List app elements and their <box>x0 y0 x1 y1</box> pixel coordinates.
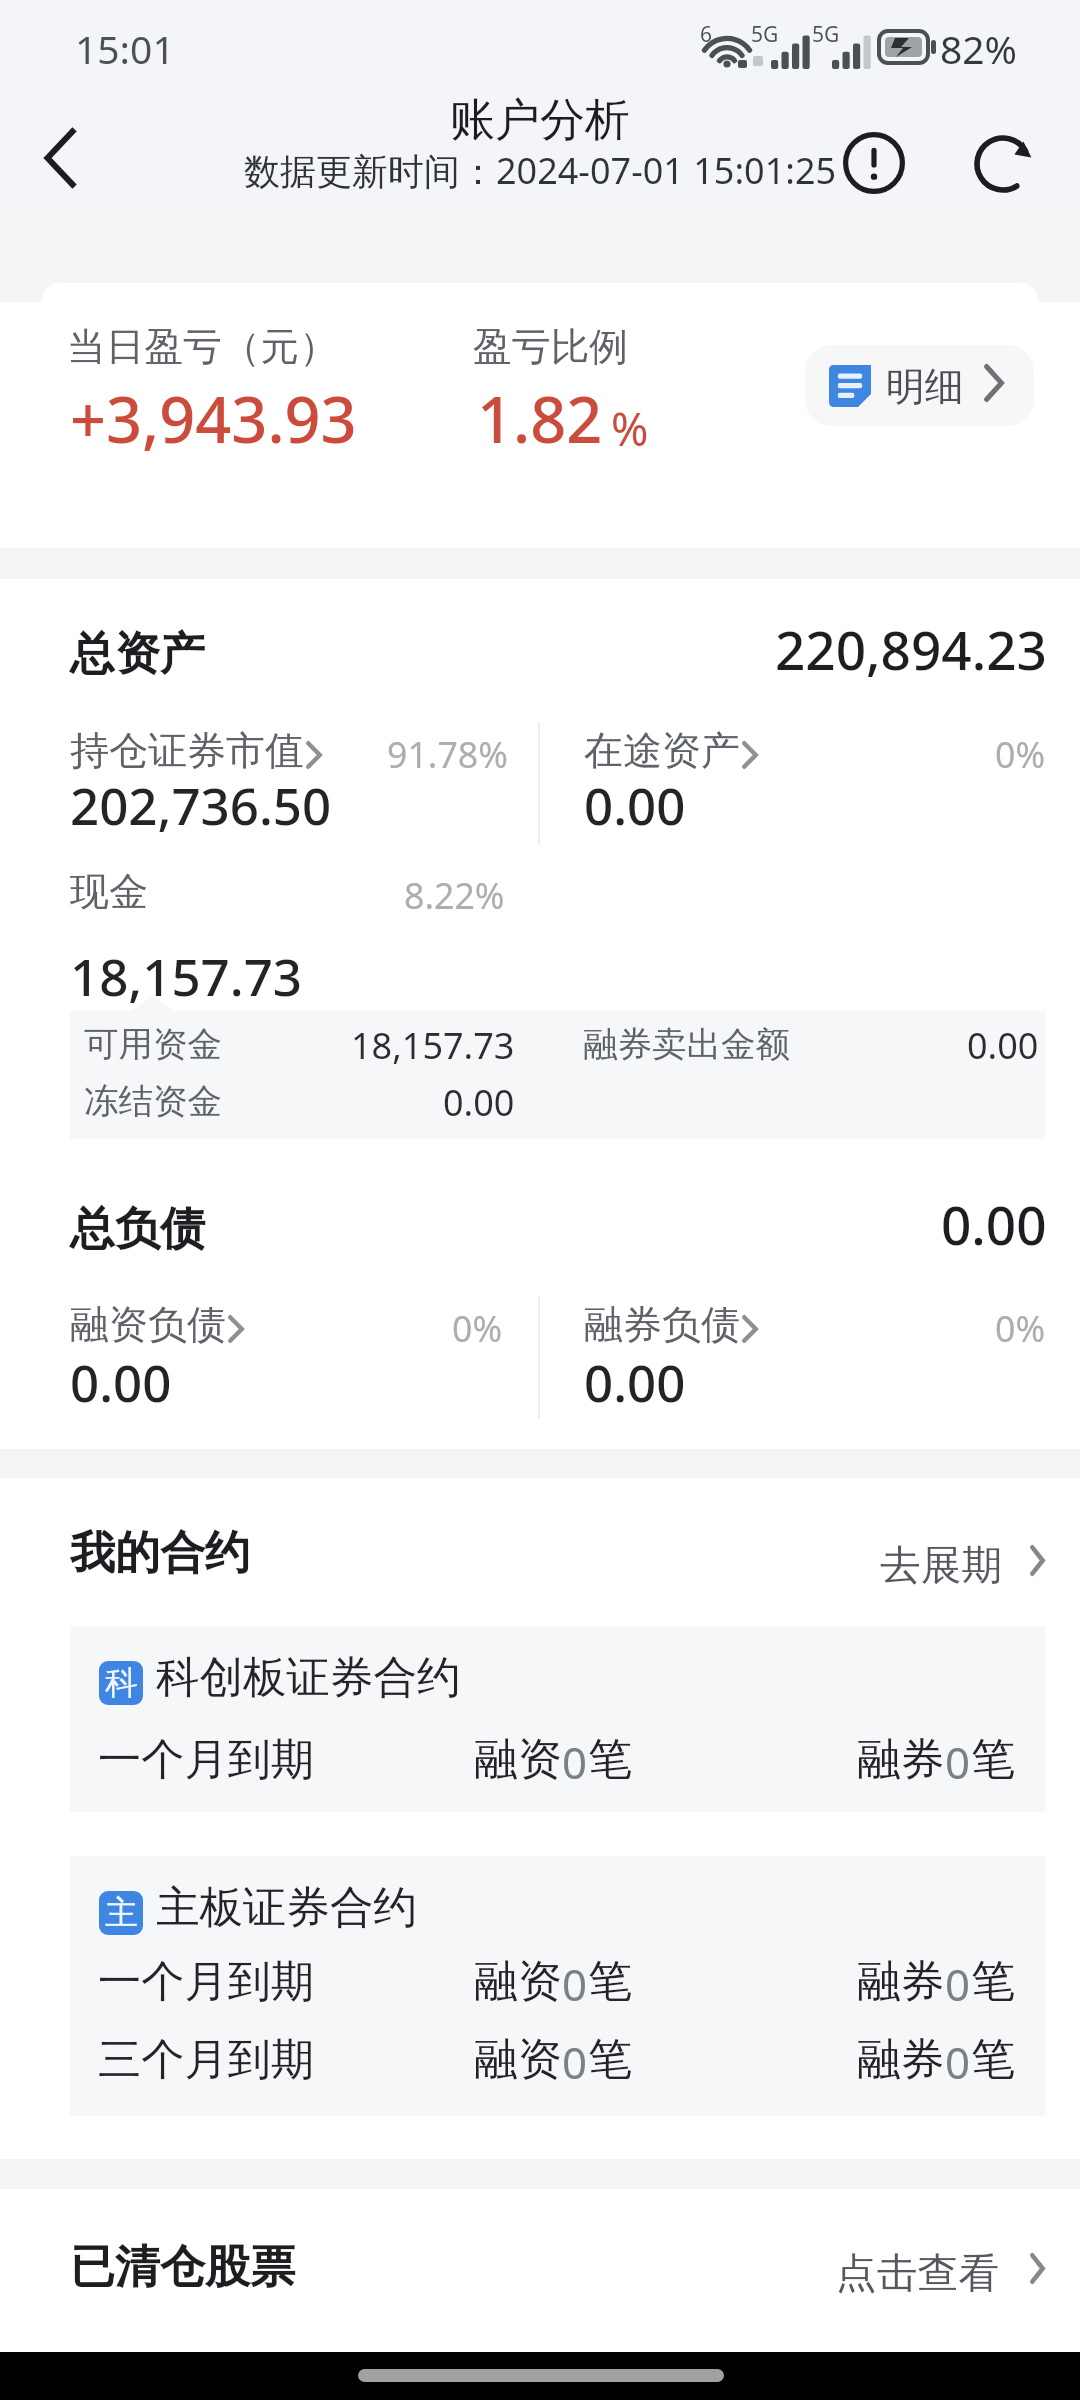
staticText: 一个月到期 <box>98 1732 314 1786</box>
staticText: 0 <box>562 1732 588 1792</box>
staticText: 可用资金 <box>84 1023 222 1066</box>
staticText: 融资 <box>474 1732 562 1787</box>
staticText: 91.78% <box>387 730 508 779</box>
staticText: 当日盈亏（元） <box>67 323 338 372</box>
staticText: 0 <box>945 1732 971 1792</box>
staticText: 0.00 <box>443 1078 515 1127</box>
staticText: 0 <box>562 2032 588 2092</box>
staticText: 盈亏比例 <box>473 323 628 372</box>
staticText: 我的合约 <box>70 1525 250 1582</box>
staticText: 三个月到期 <box>98 2032 314 2086</box>
staticText: 82% <box>940 22 1018 75</box>
staticText: 账户分析 <box>450 92 630 149</box>
button[interactable]: 融资负债 <box>70 1294 270 1346</box>
staticText: 笔 <box>971 1954 1015 2009</box>
button[interactable]: 点击查看 <box>816 2218 1060 2290</box>
staticText: 1.82 <box>477 376 603 462</box>
button[interactable]: 在途资产 <box>584 720 784 772</box>
button[interactable] <box>805 345 1034 426</box>
staticText: 点击查看 <box>836 2248 1000 2299</box>
staticText: % <box>611 398 649 459</box>
staticText: 冻结资金 <box>84 1080 222 1123</box>
staticText: 0.00 <box>70 1347 172 1416</box>
button[interactable] <box>70 1856 1045 2116</box>
staticText: 科创板证券合约 <box>156 1650 461 1705</box>
staticText: 5G <box>751 20 779 49</box>
button[interactable]: Refresh <box>939 100 1067 228</box>
staticText: 220,894.23 <box>775 613 1047 685</box>
staticText: 笔 <box>971 2032 1015 2087</box>
staticText: 科 <box>105 1662 138 1704</box>
staticText: 总负债 <box>70 1201 205 1258</box>
staticText: 笔 <box>588 1954 632 2009</box>
button[interactable]: 融券负债 <box>584 1294 784 1346</box>
staticText: 在途资产 <box>584 726 740 775</box>
button[interactable]: Info <box>810 99 938 227</box>
staticText: 0 <box>945 1954 971 2014</box>
staticText: 融资 <box>474 1954 562 2009</box>
staticText: 0% <box>452 1304 503 1353</box>
staticText: 0.00 <box>967 1021 1039 1070</box>
staticText: 一个月到期 <box>98 1954 314 2008</box>
staticText: 笔 <box>971 1732 1015 1787</box>
button[interactable]: Back <box>10 108 110 208</box>
staticText: 笔 <box>588 2032 632 2087</box>
staticText: 融资 <box>474 2032 562 2087</box>
button[interactable]: 去展期 <box>860 1510 1060 1582</box>
button[interactable] <box>70 1626 1045 1812</box>
staticText: 明细 <box>886 362 964 411</box>
staticText: 融券 <box>857 2032 945 2087</box>
staticText: 主板证券合约 <box>156 1880 417 1935</box>
staticText: 数据更新时间：2024-07-01 15:01:25 <box>244 146 837 195</box>
staticText: 持仓证券市值 <box>70 726 304 775</box>
staticText: 0.00 <box>584 1347 686 1416</box>
staticText: 总资产 <box>70 626 205 683</box>
staticText: 5G <box>812 20 840 49</box>
staticText: 18,157.73 <box>351 1021 515 1070</box>
staticText: 0% <box>995 1304 1046 1353</box>
staticText: 融券 <box>857 1954 945 2009</box>
staticText: 6 <box>700 20 713 49</box>
staticText: 去展期 <box>880 1540 1003 1591</box>
staticText: 融资负债 <box>70 1300 226 1349</box>
staticText: 8.22% <box>404 871 505 920</box>
staticText: 18,157.73 <box>70 941 302 1010</box>
staticText: 0 <box>945 2032 971 2092</box>
staticText: +3,943.93 <box>70 376 357 462</box>
staticText: 融券负债 <box>584 1300 740 1349</box>
staticText: 0.00 <box>584 770 686 839</box>
button[interactable]: 持仓证券市值 <box>70 720 330 772</box>
staticText: 现金 <box>70 867 148 916</box>
staticText: 15:01 <box>75 22 175 75</box>
staticText: 0.00 <box>941 1188 1047 1260</box>
staticText: 笔 <box>588 1732 632 1787</box>
staticText: 融券 <box>857 1732 945 1787</box>
staticText: 202,736.50 <box>70 770 332 839</box>
staticText: 已清仓股票 <box>70 2239 295 2296</box>
staticText: 0% <box>995 730 1046 779</box>
staticText: 融券卖出金额 <box>583 1023 790 1066</box>
staticText: 主 <box>105 1892 138 1934</box>
staticText: 0 <box>562 1954 588 2014</box>
